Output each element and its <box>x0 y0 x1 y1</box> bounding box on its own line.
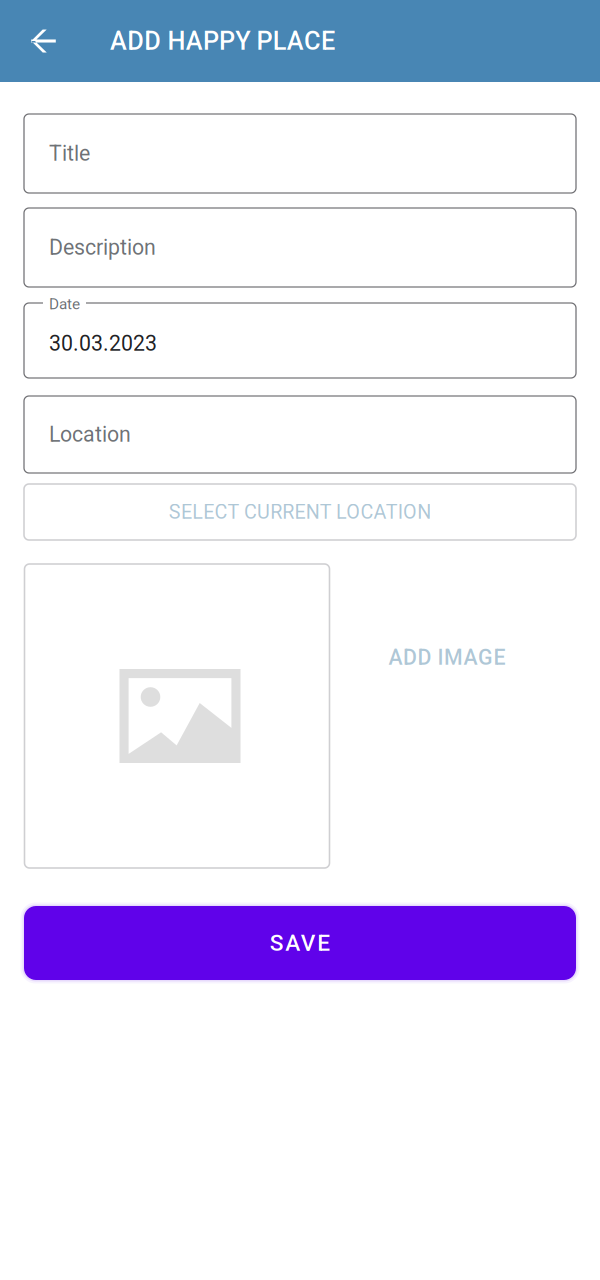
staticText: ADD HAPPY PLACE <box>110 26 335 56</box>
staticText: ADD IMAGE <box>388 645 505 670</box>
staticText: Date <box>49 295 80 313</box>
staticText: SELECT CURRENT LOCATION <box>169 500 431 523</box>
button[interactable]: Back <box>15 13 72 69</box>
staticText: Title <box>49 141 90 166</box>
staticText: SAVE <box>270 930 330 956</box>
button[interactable]: SELECT CURRENT LOCATION <box>24 484 576 540</box>
staticText: Location <box>49 422 131 447</box>
button[interactable]: ADD IMAGE <box>329 564 575 868</box>
button[interactable]: SAVE <box>24 906 576 980</box>
staticText: Description <box>49 235 156 260</box>
button[interactable]: Select image <box>24 564 329 868</box>
staticText: 30.03.2023 <box>49 331 157 356</box>
